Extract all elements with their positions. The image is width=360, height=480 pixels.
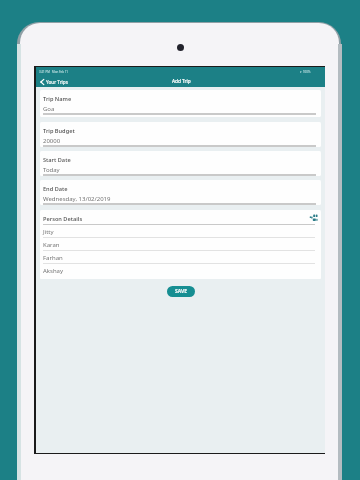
staticText: 3:21 PM Mon Feb 11 — [39, 70, 68, 74]
staticText: Person Details — [43, 215, 83, 223]
staticText: Start Date — [43, 156, 71, 164]
button[interactable]: Farhan — [40, 251, 321, 264]
staticText: Akshay — [43, 267, 64, 275]
button[interactable]: End Date — [40, 180, 321, 205]
staticText: Trip Budget — [43, 127, 75, 135]
button[interactable]: Trip Name — [40, 90, 321, 117]
button[interactable]: Jitty — [40, 225, 321, 238]
button[interactable]: Trip Budget — [40, 122, 321, 147]
staticText: Goa — [43, 105, 55, 113]
button[interactable]: SAVE — [167, 286, 195, 297]
staticText: Add Trip — [172, 78, 191, 84]
button[interactable]: Add person — [310, 214, 318, 222]
staticText: SAVE — [175, 288, 188, 295]
button[interactable]: Start Date — [40, 151, 321, 176]
staticText: Farhan — [43, 254, 63, 262]
staticText: ▾ 100% — [300, 70, 311, 74]
staticText: Today — [43, 166, 60, 174]
staticText: Karan — [43, 241, 60, 249]
staticText: Jitty — [43, 228, 54, 236]
button[interactable]: Karan — [40, 238, 321, 251]
button[interactable]: Akshay — [40, 264, 321, 277]
staticText: End Date — [43, 185, 68, 193]
staticText: Wednesday, 13/02/2019 — [43, 195, 111, 203]
staticText: Your Trips — [46, 79, 68, 85]
staticText: 20000 — [43, 137, 61, 145]
staticText: Trip Name — [43, 95, 72, 103]
button[interactable]: Your Trips — [36, 78, 71, 86]
